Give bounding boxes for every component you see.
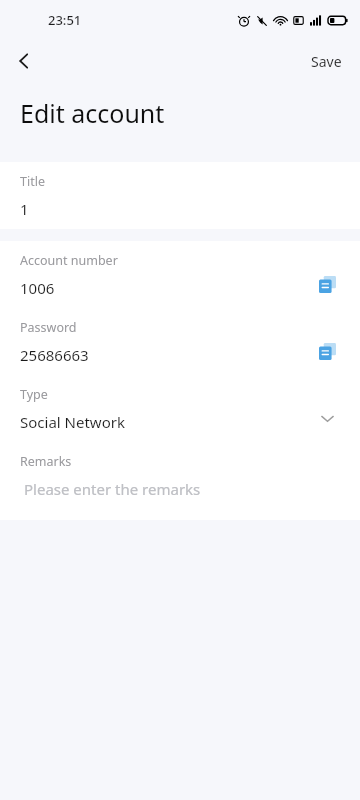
button[interactable]: Remarks: [0, 442, 360, 509]
button[interactable]: Type: [0, 375, 360, 442]
button[interactable]: Select type: [310, 401, 344, 435]
staticText: Account number: [20, 252, 118, 269]
staticText: Please enter the remarks: [24, 479, 201, 499]
staticText: 25686663: [20, 345, 89, 365]
staticText: Password: [20, 319, 77, 336]
staticText: 1: [20, 199, 29, 219]
staticText: Remarks: [20, 453, 72, 470]
staticText: 1006: [20, 278, 55, 298]
button[interactable]: Password: [0, 308, 360, 375]
staticText: Type: [20, 386, 48, 403]
button[interactable]: Copy: [310, 267, 344, 301]
button[interactable]: Copy: [310, 334, 344, 368]
staticText: Social Network: [20, 412, 125, 432]
button[interactable]: Save: [293, 40, 360, 82]
staticText: Title: [20, 173, 45, 190]
staticText: Edit account: [20, 96, 165, 130]
staticText: Save: [311, 52, 342, 71]
button[interactable]: Back: [0, 40, 48, 82]
button[interactable]: Account number: [0, 241, 360, 308]
staticText: 23:51: [48, 11, 82, 29]
button[interactable]: Title: [0, 162, 360, 229]
